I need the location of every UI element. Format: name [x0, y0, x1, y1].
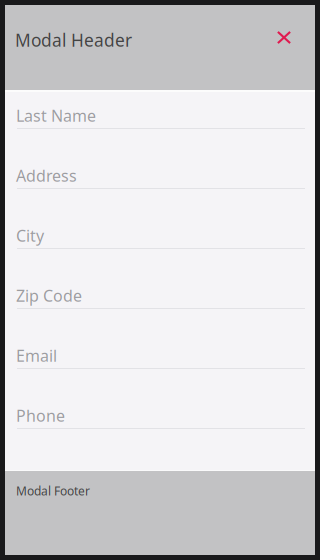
button[interactable]: Email: [17, 344, 305, 404]
staticText: Modal Header: [15, 28, 132, 51]
staticText: Email: [16, 345, 57, 366]
staticText: Phone: [16, 405, 65, 426]
staticText: Last Name: [16, 105, 96, 126]
staticText: City: [16, 225, 44, 246]
button[interactable]: Address: [17, 164, 305, 224]
staticText: Address: [16, 165, 77, 186]
button[interactable]: Close: [269, 25, 299, 55]
button[interactable]: Last Name: [17, 104, 305, 164]
button[interactable]: Zip Code: [17, 284, 305, 344]
staticText: Zip Code: [16, 285, 82, 306]
button[interactable]: Phone: [17, 404, 305, 464]
button[interactable]: City: [17, 224, 305, 284]
staticText: Modal Footer: [16, 483, 90, 499]
